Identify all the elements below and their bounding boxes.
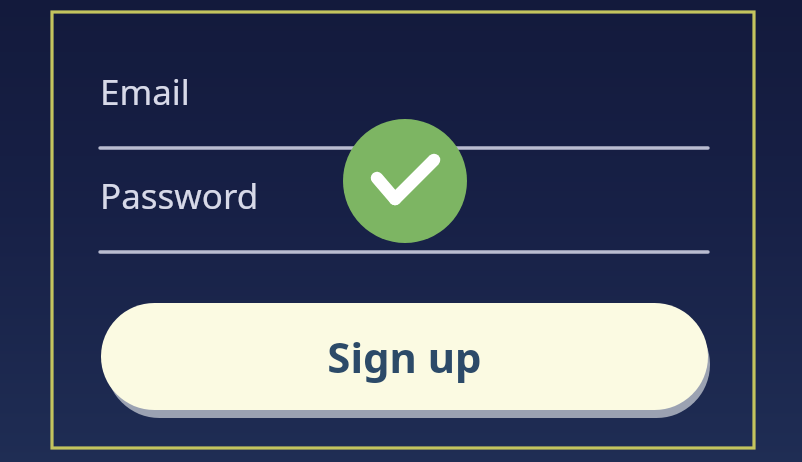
staticText: Password [100, 172, 259, 220]
button[interactable]: Email [100, 68, 350, 116]
staticText: Sign up [327, 328, 482, 385]
button[interactable]: Password [100, 172, 350, 220]
staticText: Email [100, 68, 190, 116]
button[interactable]: Verified [343, 119, 467, 243]
button[interactable]: Sign up [101, 303, 708, 410]
